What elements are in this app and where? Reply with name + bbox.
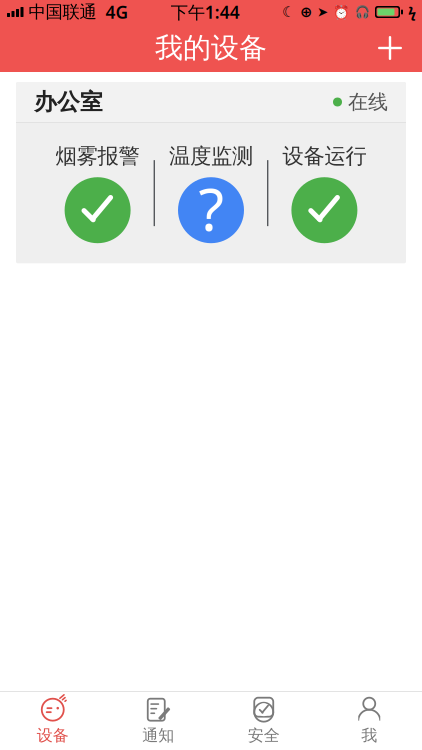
staticText: ☾ [282, 4, 295, 20]
staticText: ? [198, 169, 223, 247]
button[interactable]: 安全 [211, 692, 316, 750]
staticText: 温度监测 [169, 143, 253, 169]
staticText: ➤ [317, 4, 328, 19]
staticText: 办公室 [34, 88, 103, 116]
staticText: 烟雾报警 [56, 143, 140, 169]
button[interactable]: 添加设备 [366, 26, 414, 70]
button[interactable]: 通知 [105, 692, 211, 750]
staticText: 我的设备 [155, 31, 267, 65]
staticText: ⏰ [333, 4, 350, 20]
staticText: 我 [361, 726, 377, 745]
staticText: ⊕ [300, 4, 312, 20]
staticText: 设备 [37, 726, 69, 745]
staticText: 在线 [348, 90, 388, 114]
button[interactable]: 我 [316, 692, 422, 750]
staticText: 安全 [248, 726, 280, 745]
staticText: 下午1:44 [171, 0, 240, 23]
staticText: 通知 [142, 726, 174, 745]
staticText: 🎧 [355, 5, 370, 19]
button[interactable]: 设备运行 [268, 139, 380, 247]
staticText: 中国联通 [28, 1, 96, 23]
staticText: 设备运行 [282, 143, 366, 169]
staticText: 4G [105, 0, 128, 23]
staticText: ϟ [408, 2, 416, 22]
button[interactable]: 设备 [0, 692, 105, 750]
button[interactable]: 温度监测 [155, 139, 267, 247]
button[interactable]: 烟雾报警 [42, 139, 154, 247]
